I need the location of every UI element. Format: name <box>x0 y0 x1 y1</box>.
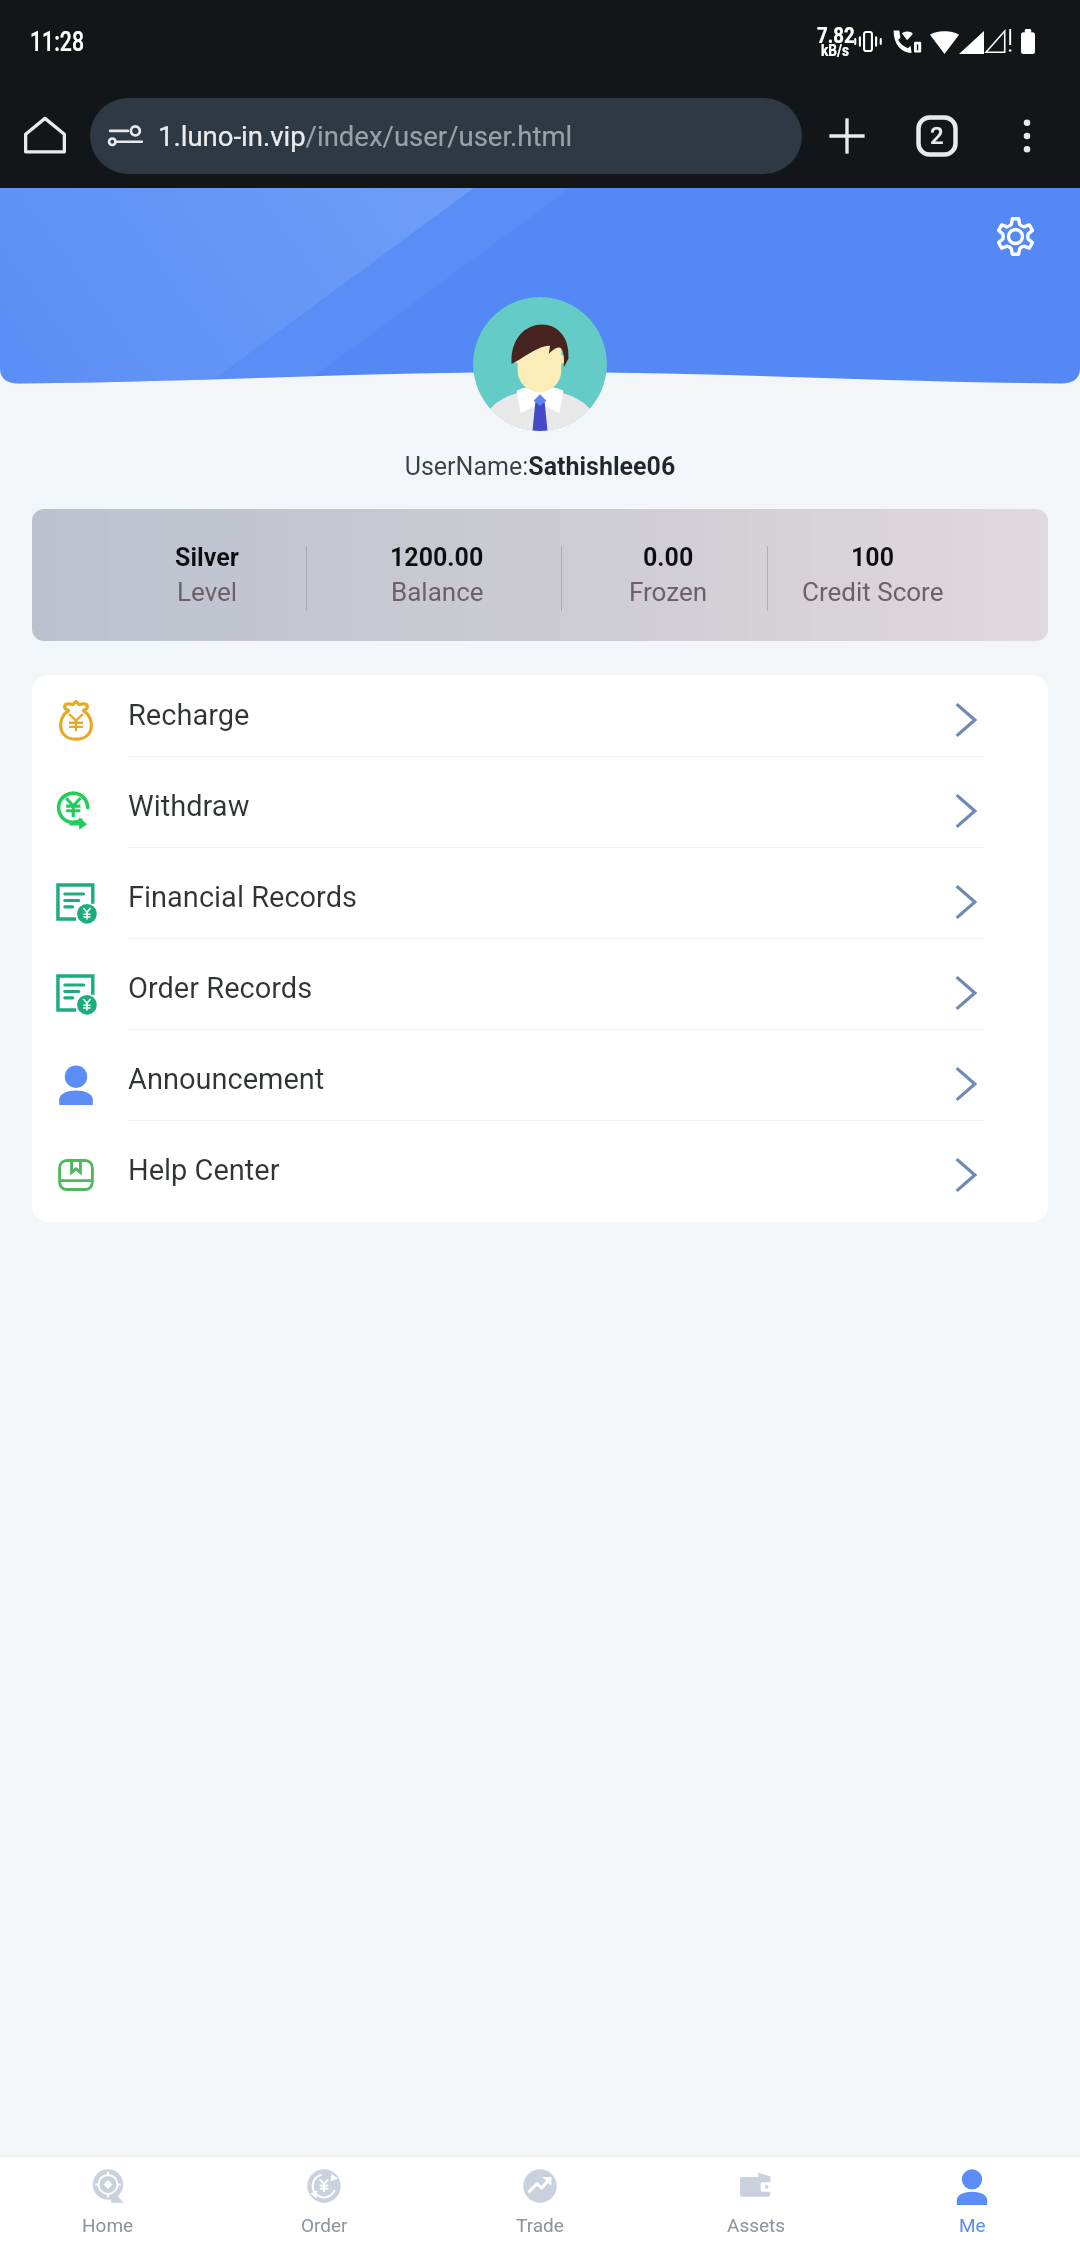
button[interactable]: Withdraw <box>32 766 1048 857</box>
staticText: Withdraw <box>128 789 250 823</box>
button[interactable]: Home <box>0 91 90 181</box>
button[interactable]: Home <box>0 2157 216 2246</box>
staticText: Financial Records <box>128 880 357 914</box>
staticText: Home <box>82 2214 134 2236</box>
button[interactable]: More options <box>982 91 1072 181</box>
staticText: 11:28 <box>30 25 85 58</box>
button[interactable]: Recharge <box>32 675 1048 766</box>
button[interactable]: Help Center <box>32 1130 1048 1221</box>
staticText: Recharge <box>128 698 250 732</box>
staticText: Order Records <box>128 971 313 1005</box>
button[interactable]: Financial Records <box>32 857 1048 948</box>
staticText: Me <box>959 2214 986 2236</box>
staticText: kB/s <box>821 41 849 60</box>
staticText: 1.luno-in.vip/index/user/user.html <box>158 120 573 152</box>
button[interactable]: Order <box>216 2157 432 2246</box>
staticText: Order <box>301 2214 348 2236</box>
button[interactable]: Tabs <box>892 91 982 181</box>
staticText: Announcement <box>128 1062 325 1096</box>
staticText: 100 <box>851 543 895 572</box>
staticText: 0.00 <box>643 543 694 572</box>
button[interactable]: Trade <box>432 2157 648 2246</box>
button[interactable]: Order Records <box>32 948 1048 1039</box>
staticText: Level <box>177 577 238 607</box>
button[interactable]: Settings <box>982 203 1048 269</box>
staticText: 2 <box>930 122 944 150</box>
staticText: Balance <box>391 577 484 607</box>
staticText: Frozen <box>629 577 708 607</box>
staticText: Assets <box>727 2214 786 2236</box>
staticText: Silver <box>175 543 239 572</box>
staticText: Help Center <box>128 1153 280 1187</box>
button[interactable]: Silver <box>32 509 1048 641</box>
staticText: 1200.00 <box>390 543 484 572</box>
staticText: 7.82 <box>817 23 855 49</box>
staticText: Credit Score <box>802 577 944 607</box>
button[interactable]: 1.luno-in.vip/index/user/user.html <box>90 98 802 174</box>
button[interactable]: Me <box>864 2157 1080 2246</box>
button[interactable]: Assets <box>648 2157 864 2246</box>
button[interactable]: Announcement <box>32 1039 1048 1130</box>
button[interactable]: New tab <box>802 91 892 181</box>
staticText: UserName:Sathishlee06 <box>0 452 1080 481</box>
button[interactable]: Profile photo <box>473 297 607 431</box>
staticText: Trade <box>516 2214 564 2236</box>
